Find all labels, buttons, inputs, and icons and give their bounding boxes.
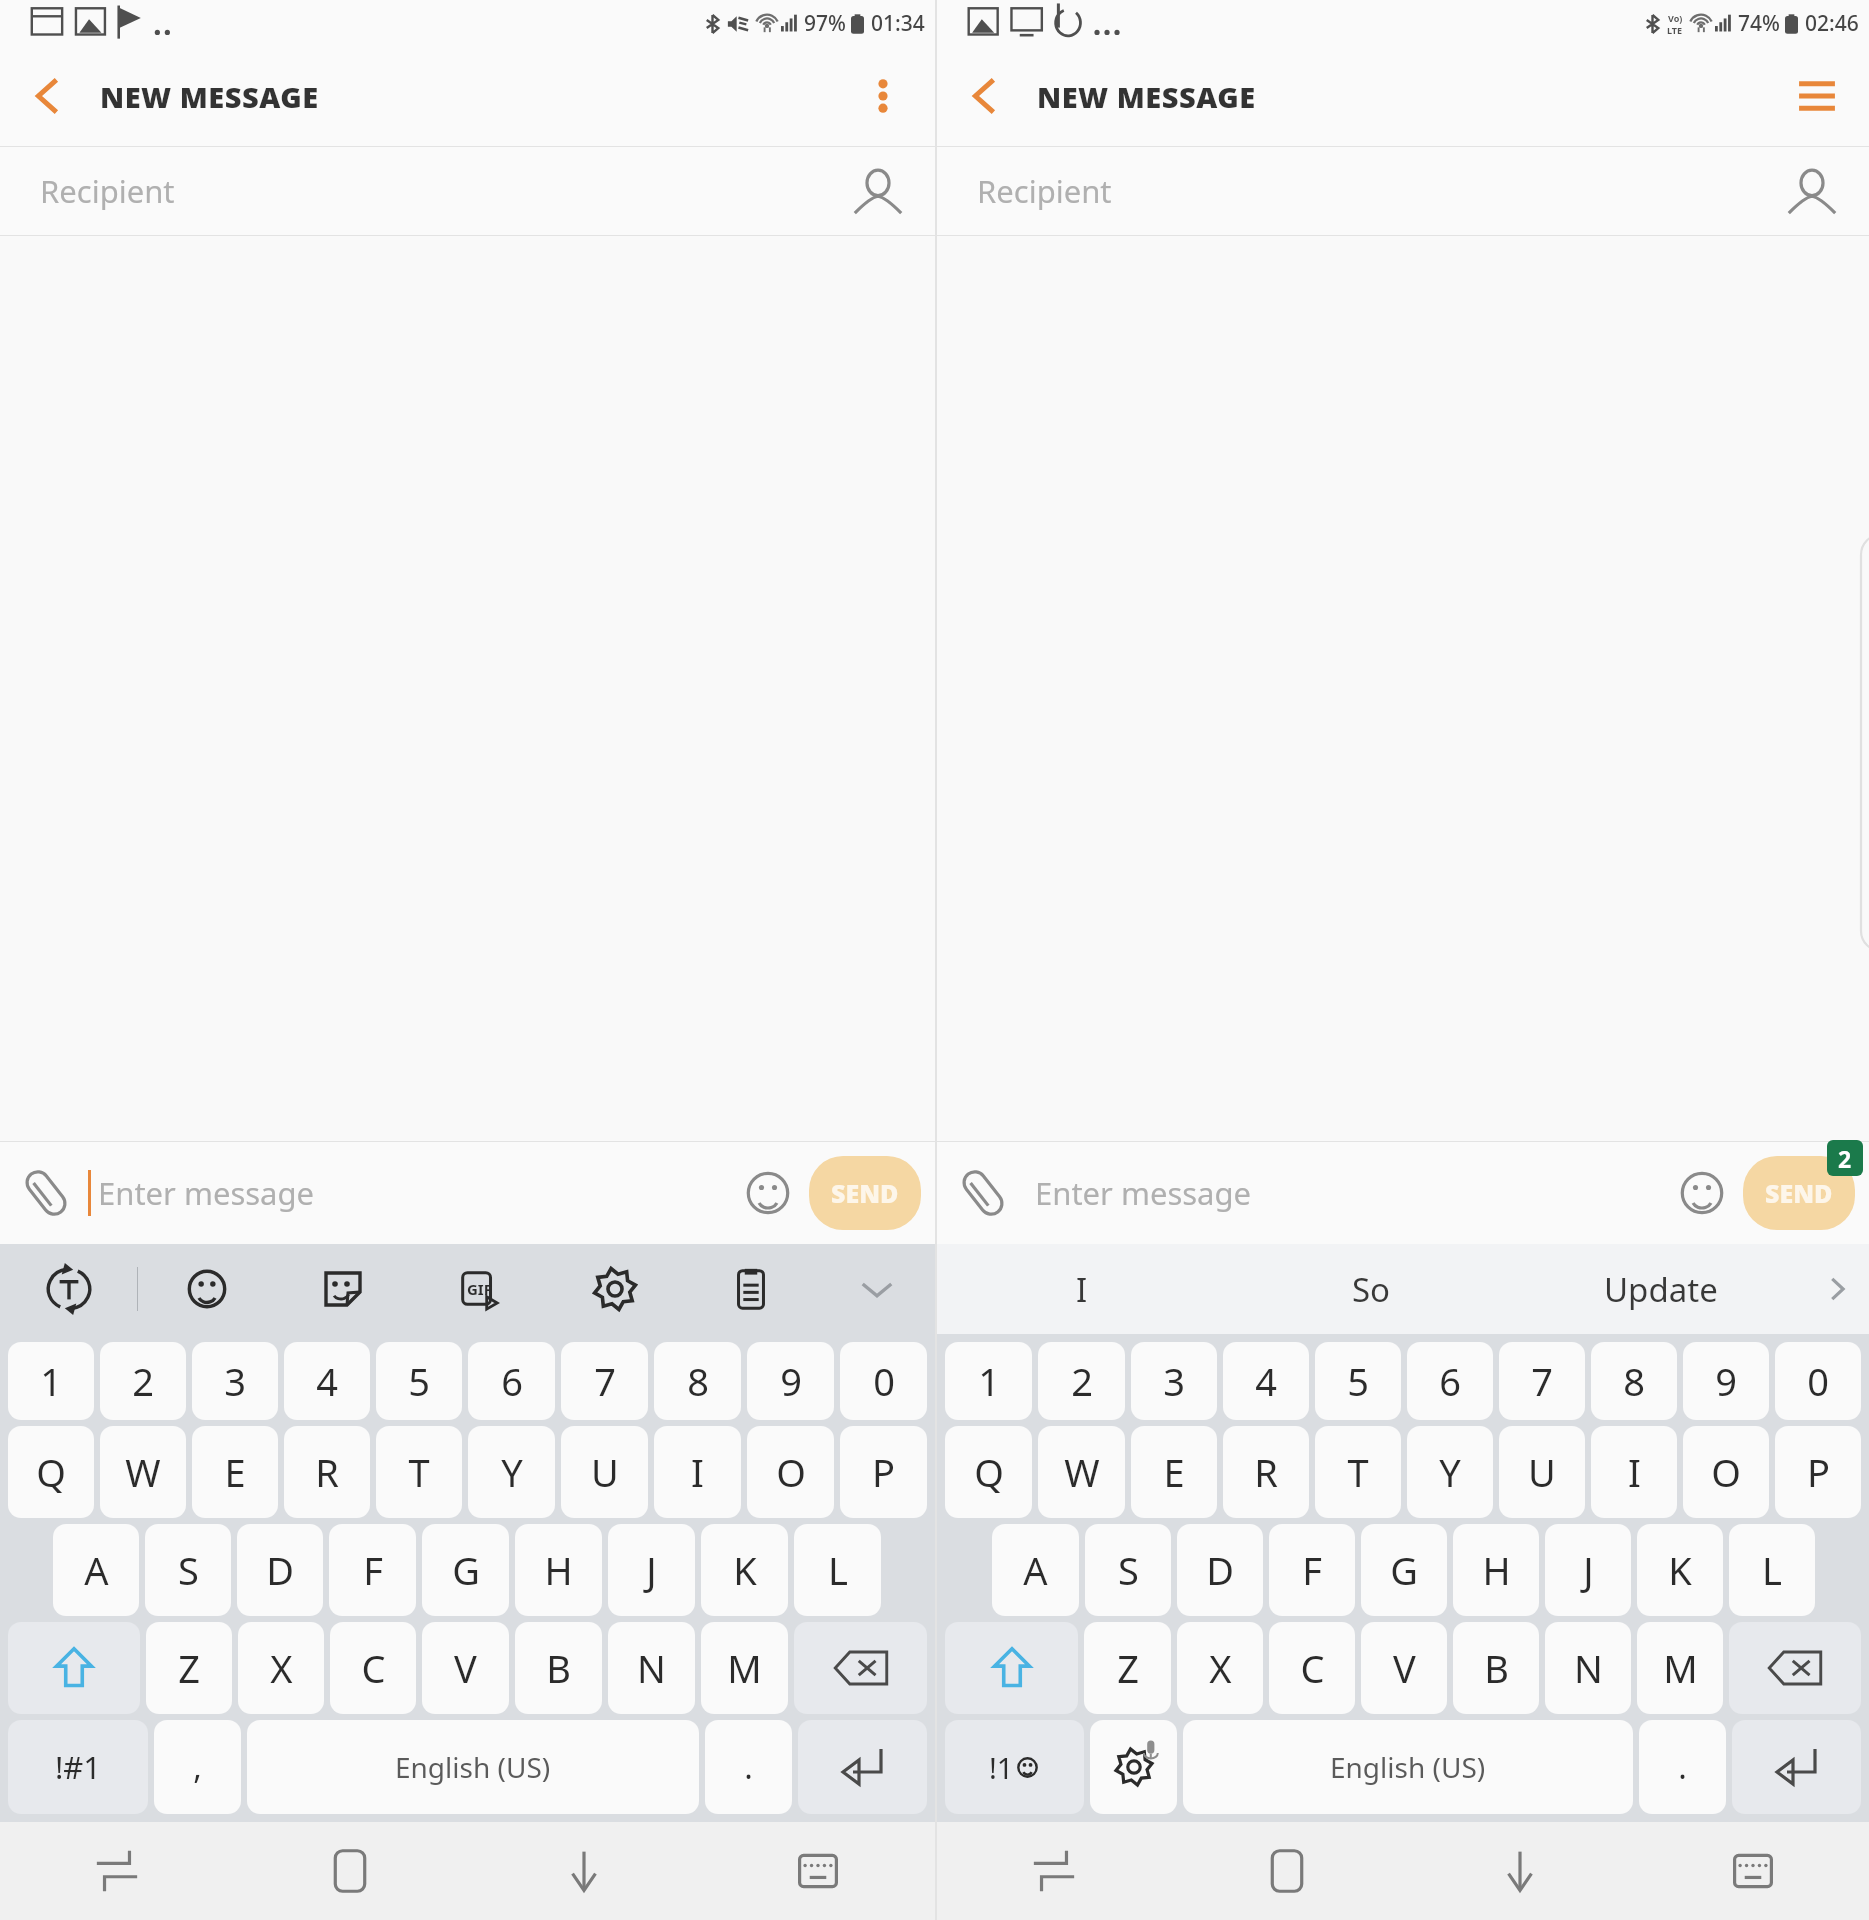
button[interactable]: Recents	[0, 1822, 233, 1920]
button[interactable]: C	[1269, 1622, 1355, 1714]
button[interactable]: GIF	[411, 1244, 547, 1334]
button[interactable]: Hide keyboard	[1403, 1822, 1636, 1920]
button[interactable]: M	[1637, 1622, 1723, 1714]
button[interactable]: L	[1729, 1524, 1815, 1616]
button[interactable]: J	[1545, 1524, 1631, 1616]
button[interactable]: X	[238, 1622, 324, 1714]
button[interactable]: U	[1499, 1426, 1585, 1518]
button[interactable]: .	[705, 1720, 792, 1814]
button[interactable]: English (US)	[1183, 1720, 1633, 1814]
button[interactable]: I	[1591, 1426, 1677, 1518]
button[interactable]: R	[284, 1426, 370, 1518]
button[interactable]: Hide keyboard	[467, 1822, 701, 1920]
button[interactable]: E	[1131, 1426, 1217, 1518]
button[interactable]: Add contact	[849, 162, 907, 220]
button[interactable]: 5	[1315, 1342, 1401, 1420]
button[interactable]: Clipboard	[683, 1244, 819, 1334]
button[interactable]: .	[1639, 1720, 1726, 1814]
button[interactable]: !1	[945, 1720, 1084, 1814]
button[interactable]: S	[145, 1524, 231, 1616]
button[interactable]: 7	[1499, 1342, 1585, 1420]
button[interactable]: Keyboard	[1636, 1822, 1869, 1920]
button[interactable]: W	[1038, 1426, 1125, 1518]
button[interactable]: !#1	[8, 1720, 148, 1814]
button[interactable]: T	[1315, 1426, 1401, 1518]
button[interactable]: Menu	[1785, 64, 1849, 128]
button[interactable]: I	[654, 1426, 741, 1518]
button[interactable]: H	[515, 1524, 602, 1616]
button[interactable]: T	[376, 1426, 462, 1518]
button[interactable]: Enter	[798, 1720, 927, 1814]
button[interactable]: 3	[1131, 1342, 1217, 1420]
button[interactable]: Z	[146, 1622, 232, 1714]
button[interactable]: Q	[945, 1426, 1032, 1518]
button[interactable]: Enter	[1732, 1720, 1861, 1814]
button[interactable]: ,	[154, 1720, 241, 1814]
button[interactable]: D	[1177, 1524, 1263, 1616]
button[interactable]: Keyboard	[701, 1822, 935, 1920]
button[interactable]: N	[608, 1622, 695, 1714]
button[interactable]: A	[992, 1524, 1079, 1616]
button[interactable]: M	[701, 1622, 788, 1714]
button[interactable]: Back	[955, 66, 1015, 126]
button[interactable]: X	[1177, 1622, 1263, 1714]
button[interactable]: SEND	[1743, 1156, 1855, 1230]
button[interactable]: F	[1269, 1524, 1355, 1616]
button[interactable]: H	[1453, 1524, 1539, 1616]
button[interactable]: Y	[468, 1426, 555, 1518]
button[interactable]: K	[701, 1524, 788, 1616]
button[interactable]: U	[561, 1426, 648, 1518]
button[interactable]: K	[1637, 1524, 1723, 1616]
button[interactable]: 8	[1591, 1342, 1677, 1420]
button[interactable]: B	[515, 1622, 602, 1714]
button[interactable]: 6	[468, 1342, 555, 1420]
button[interactable]: O	[747, 1426, 834, 1518]
button[interactable]: Stickers	[275, 1244, 411, 1334]
button[interactable]: Translate	[0, 1244, 137, 1334]
button[interactable]: Collapse	[819, 1244, 935, 1334]
button[interactable]: 7	[561, 1342, 648, 1420]
button[interactable]: 2	[1038, 1342, 1125, 1420]
button[interactable]: Add contact	[1783, 162, 1841, 220]
button[interactable]: Shift	[8, 1622, 140, 1714]
button[interactable]: 1	[8, 1342, 94, 1420]
button[interactable]: Attach	[953, 1163, 1013, 1223]
button[interactable]: 0	[840, 1342, 927, 1420]
button[interactable]: 4	[1223, 1342, 1309, 1420]
button[interactable]: Update	[1516, 1244, 1805, 1334]
button[interactable]: Emoji	[1673, 1164, 1731, 1222]
button[interactable]: Emoji	[138, 1244, 275, 1334]
button[interactable]: V	[1361, 1622, 1447, 1714]
button[interactable]: W	[100, 1426, 186, 1518]
button[interactable]: Q	[8, 1426, 94, 1518]
button[interactable]: Emoji	[739, 1164, 797, 1222]
button[interactable]: 5	[376, 1342, 462, 1420]
button[interactable]: 8	[654, 1342, 741, 1420]
button[interactable]: Recipient	[937, 147, 1869, 235]
button[interactable]: Backspace	[1729, 1622, 1861, 1714]
button[interactable]: SEND	[809, 1156, 921, 1230]
button[interactable]: 2	[100, 1342, 186, 1420]
button[interactable]: 9	[1683, 1342, 1769, 1420]
button[interactable]: 6	[1407, 1342, 1493, 1420]
button[interactable]: Shift	[945, 1622, 1078, 1714]
button[interactable]: Backspace	[794, 1622, 927, 1714]
button[interactable]: D	[237, 1524, 323, 1616]
button[interactable]: P	[840, 1426, 927, 1518]
button[interactable]: More options	[851, 64, 915, 128]
button[interactable]: G	[1361, 1524, 1447, 1616]
button[interactable]: F	[329, 1524, 416, 1616]
button[interactable]: S	[1085, 1524, 1171, 1616]
button[interactable]: O	[1683, 1426, 1769, 1518]
button[interactable]: V	[422, 1622, 509, 1714]
button[interactable]: Home	[1170, 1822, 1403, 1920]
button[interactable]: Home	[233, 1822, 467, 1920]
button[interactable]: I	[937, 1244, 1227, 1334]
button[interactable]: English (US)	[247, 1720, 699, 1814]
button[interactable]: J	[608, 1524, 695, 1616]
button[interactable]: Back	[18, 66, 78, 126]
button[interactable]: Keyboard settings	[1090, 1720, 1177, 1814]
button[interactable]: Recents	[937, 1822, 1170, 1920]
button[interactable]: 1	[945, 1342, 1032, 1420]
button[interactable]: 9	[747, 1342, 834, 1420]
